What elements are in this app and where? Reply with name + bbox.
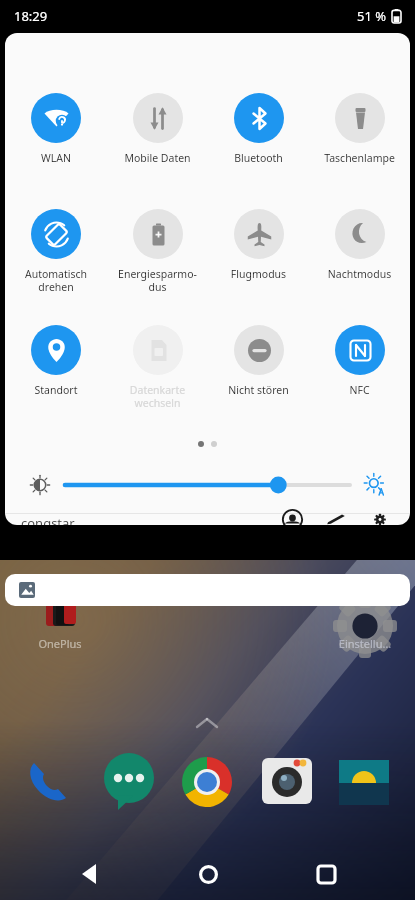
- staticText: Energiesparmo- dus: [109, 267, 206, 294]
- button[interactable]: [63, 474, 352, 496]
- staticText: Flugmodus: [210, 267, 307, 281]
- button[interactable]: Nicht stören: [208, 315, 309, 431]
- staticText: Taschenlampe: [311, 151, 408, 165]
- button[interactable]: Brightness: [17, 462, 63, 508]
- button[interactable]: WLAN: [5, 83, 107, 199]
- button[interactable]: Bluetooth: [208, 83, 309, 199]
- staticText: NFC: [311, 383, 408, 397]
- staticText: Nachtmodus: [311, 267, 408, 281]
- staticText: Mobile Daten: [109, 151, 206, 165]
- button[interactable]: Home: [179, 848, 237, 900]
- staticText: 51 %: [357, 7, 387, 25]
- staticText: Automatisch drehen: [7, 267, 105, 294]
- button[interactable]: Energiesparmo- dus: [107, 199, 208, 315]
- button[interactable]: Automatisch drehen: [5, 199, 107, 315]
- staticText: OnePlus: [10, 636, 110, 651]
- button[interactable]: NFC: [309, 315, 410, 431]
- staticText: Nicht stören: [210, 383, 307, 397]
- button[interactable]: Standort: [5, 315, 107, 431]
- button[interactable]: Settings: [358, 514, 402, 525]
- button[interactable]: Nachtmodus: [309, 199, 410, 315]
- staticText: 18:29: [14, 7, 48, 25]
- button[interactable]: Edit: [314, 514, 358, 525]
- button[interactable]: Back: [60, 848, 118, 900]
- button[interactable]: Flugmodus: [208, 199, 309, 315]
- button[interactable]: Recents: [297, 848, 355, 900]
- staticText: Einstellu…: [315, 636, 415, 651]
- button[interactable]: Taschenlampe: [309, 83, 410, 199]
- button[interactable]: User: [270, 514, 314, 525]
- staticText: congstar: [21, 514, 75, 525]
- button[interactable]: Auto brightness: [352, 462, 398, 508]
- button[interactable]: Mobile Daten: [107, 83, 208, 199]
- staticText: WLAN: [7, 151, 105, 165]
- button[interactable]: Datenkarte wechseln: [107, 315, 208, 431]
- button[interactable]: [5, 574, 410, 606]
- staticText: Datenkarte wechseln: [109, 383, 206, 410]
- staticText: Standort: [7, 383, 105, 397]
- staticText: Bluetooth: [210, 151, 307, 165]
